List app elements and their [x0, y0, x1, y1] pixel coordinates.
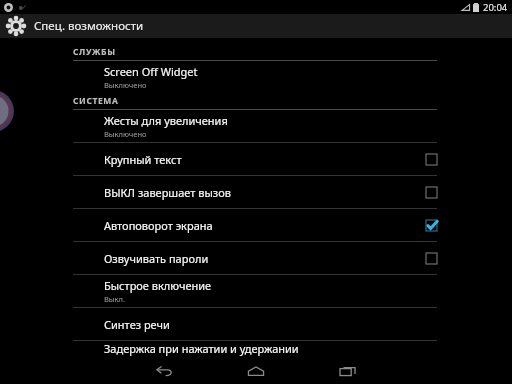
button[interactable]: Home	[210, 358, 302, 384]
other: Unchecked	[426, 187, 437, 198]
staticText: Озвучивать пароли	[104, 251, 209, 266]
other: Checked	[426, 220, 437, 231]
button[interactable]: Back	[118, 358, 210, 384]
staticText: Выключено	[104, 80, 147, 90]
button[interactable]: Screen Off Widget	[73, 61, 437, 93]
staticText: 20:04	[483, 1, 508, 14]
staticText: Жесты для увеличения	[104, 113, 228, 128]
button[interactable]: Recent apps	[302, 358, 394, 384]
staticText: СЛУЖБЫ	[73, 46, 116, 58]
button[interactable]: Озвучивать пароли	[73, 242, 437, 274]
staticText: Синтез речи	[104, 317, 170, 332]
button[interactable]: Floating widget	[0, 90, 14, 132]
staticText: Выкл.	[104, 294, 125, 304]
staticText: Выключено	[104, 129, 147, 139]
staticText: Автоповорот экрана	[104, 218, 213, 233]
staticText: СИСТЕМА	[73, 95, 119, 107]
button[interactable]: Жесты для увеличения	[73, 110, 437, 142]
staticText: Задержка при нажатии и удержании	[104, 341, 299, 356]
button[interactable]: Автоповорот экрана	[73, 209, 437, 241]
button[interactable]: Быстрое включение	[73, 275, 437, 307]
button[interactable]: Крупный текст	[73, 143, 437, 175]
button[interactable]: Синтез речи	[73, 308, 437, 340]
other: Unchecked	[426, 253, 437, 264]
other: Unchecked	[426, 154, 437, 165]
staticText: ВЫКЛ завершает вызов	[104, 185, 231, 200]
staticText: Спец. возможности	[34, 18, 144, 34]
button[interactable]: ВЫКЛ завершает вызов	[73, 176, 437, 208]
staticText: Крупный текст	[104, 152, 182, 167]
button[interactable]: Спец. возможности	[0, 14, 512, 38]
button[interactable]: Задержка при нажатии и удержании	[73, 341, 437, 358]
staticText: Screen Off Widget	[104, 64, 198, 79]
staticText: Быстрое включение	[104, 278, 212, 293]
